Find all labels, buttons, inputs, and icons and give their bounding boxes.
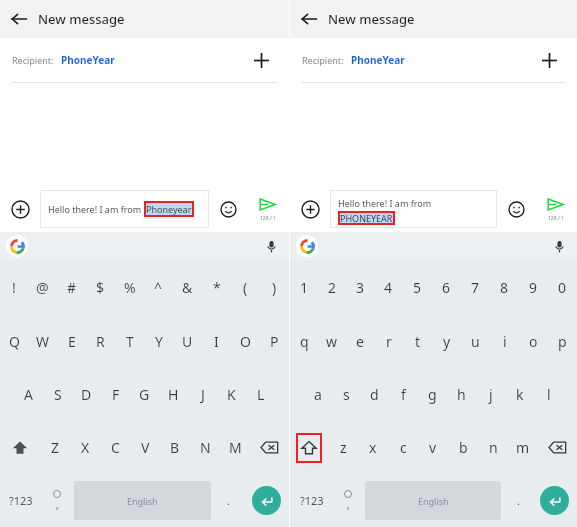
button[interactable]: @ [28,260,57,314]
button[interactable]: C [100,421,130,474]
button[interactable]: Q [0,314,28,368]
button[interactable]: Attach [290,189,330,229]
button[interactable]: . [504,474,532,527]
button[interactable]: Emoji key [334,474,362,527]
button[interactable]: U [173,314,202,368]
button[interactable]: English [365,481,501,520]
button[interactable]: G [130,368,159,421]
button[interactable]: Send [247,185,287,232]
button[interactable]: 0 [548,260,577,314]
button[interactable]: Send [535,185,575,232]
button[interactable]: T [115,314,144,368]
button[interactable]: Add recipient [241,40,281,80]
button[interactable]: K [217,368,246,421]
button[interactable]: M [220,421,250,474]
button[interactable]: R [86,314,115,368]
button[interactable]: m [508,421,538,474]
button[interactable]: Y [144,314,173,368]
button[interactable]: Back [290,0,328,38]
button[interactable]: H [159,368,188,421]
button[interactable]: F [101,368,130,421]
button[interactable]: L [246,368,275,421]
button[interactable]: ?123 [0,474,42,527]
button[interactable]: Add recipient [529,40,569,80]
button[interactable]: d [360,368,389,421]
button[interactable]: Recipient: [290,38,577,82]
button[interactable]: 9 [519,260,548,314]
button[interactable]: 1 [290,260,318,314]
button[interactable]: E [57,314,86,368]
button[interactable]: 6 [432,260,461,314]
button[interactable]: Backspace [250,421,289,474]
button[interactable]: Enter [532,474,577,527]
button[interactable]: Attach [0,189,40,229]
button[interactable]: Google [296,235,318,257]
button[interactable]: P [260,314,289,368]
button[interactable]: g [418,368,447,421]
button[interactable]: r [374,314,403,368]
button[interactable]: O [231,314,260,368]
button[interactable]: A [14,368,43,421]
button[interactable]: c [388,421,418,474]
button[interactable]: B [160,421,190,474]
button[interactable]: e [346,314,374,368]
button[interactable]: l [534,368,563,421]
button[interactable]: Shift [0,421,40,474]
button[interactable]: y [432,314,461,368]
button[interactable]: Voice input [547,234,571,258]
button[interactable]: Emoji [209,190,247,228]
button[interactable]: b [448,421,478,474]
button[interactable]: 2 [318,260,346,314]
button[interactable]: 3 [346,260,374,314]
button[interactable]: o [519,314,548,368]
button[interactable]: Hello there! I am from [330,190,497,228]
button[interactable]: English [74,481,211,520]
button[interactable]: z [328,421,358,474]
button[interactable]: x [358,421,388,474]
button[interactable]: & [173,260,202,314]
button[interactable]: h [447,368,476,421]
button[interactable]: Emoji [497,190,535,228]
button[interactable]: Back [0,0,38,38]
button[interactable]: a [304,368,332,421]
button[interactable]: Voice input [259,234,283,258]
button[interactable]: w [318,314,346,368]
button[interactable]: S [43,368,72,421]
button[interactable]: $ [86,260,115,314]
button[interactable]: ^ [144,260,173,314]
button[interactable]: k [505,368,534,421]
button[interactable]: s [332,368,360,421]
button[interactable]: # [57,260,86,314]
button[interactable]: u [461,314,490,368]
button[interactable]: 8 [490,260,519,314]
button[interactable]: * [202,260,231,314]
button[interactable]: Z [40,421,70,474]
button[interactable]: X [70,421,100,474]
button[interactable]: V [130,421,160,474]
button[interactable]: I [202,314,231,368]
button[interactable]: % [115,260,144,314]
button[interactable]: Enter [243,474,289,527]
button[interactable]: 5 [403,260,432,314]
button[interactable]: Recipient: [0,38,289,82]
button[interactable]: N [190,421,220,474]
button[interactable]: J [188,368,217,421]
button[interactable]: 7 [461,260,490,314]
button[interactable]: q [290,314,318,368]
button[interactable]: W [28,314,57,368]
button[interactable]: Hello there! I am from [40,190,209,228]
button[interactable]: n [478,421,508,474]
button[interactable]: D [72,368,101,421]
button[interactable]: ( [231,260,260,314]
button[interactable]: Emoji key [42,474,71,527]
button[interactable]: Google [6,235,28,257]
button[interactable]: 4 [374,260,403,314]
button[interactable]: j [476,368,505,421]
button[interactable]: p [548,314,577,368]
button[interactable]: Shift [290,421,328,474]
button[interactable]: ! [0,260,28,314]
button[interactable]: . [214,474,243,527]
button[interactable]: ) [260,260,289,314]
button[interactable]: Backspace [538,421,577,474]
button[interactable]: ?123 [290,474,334,527]
